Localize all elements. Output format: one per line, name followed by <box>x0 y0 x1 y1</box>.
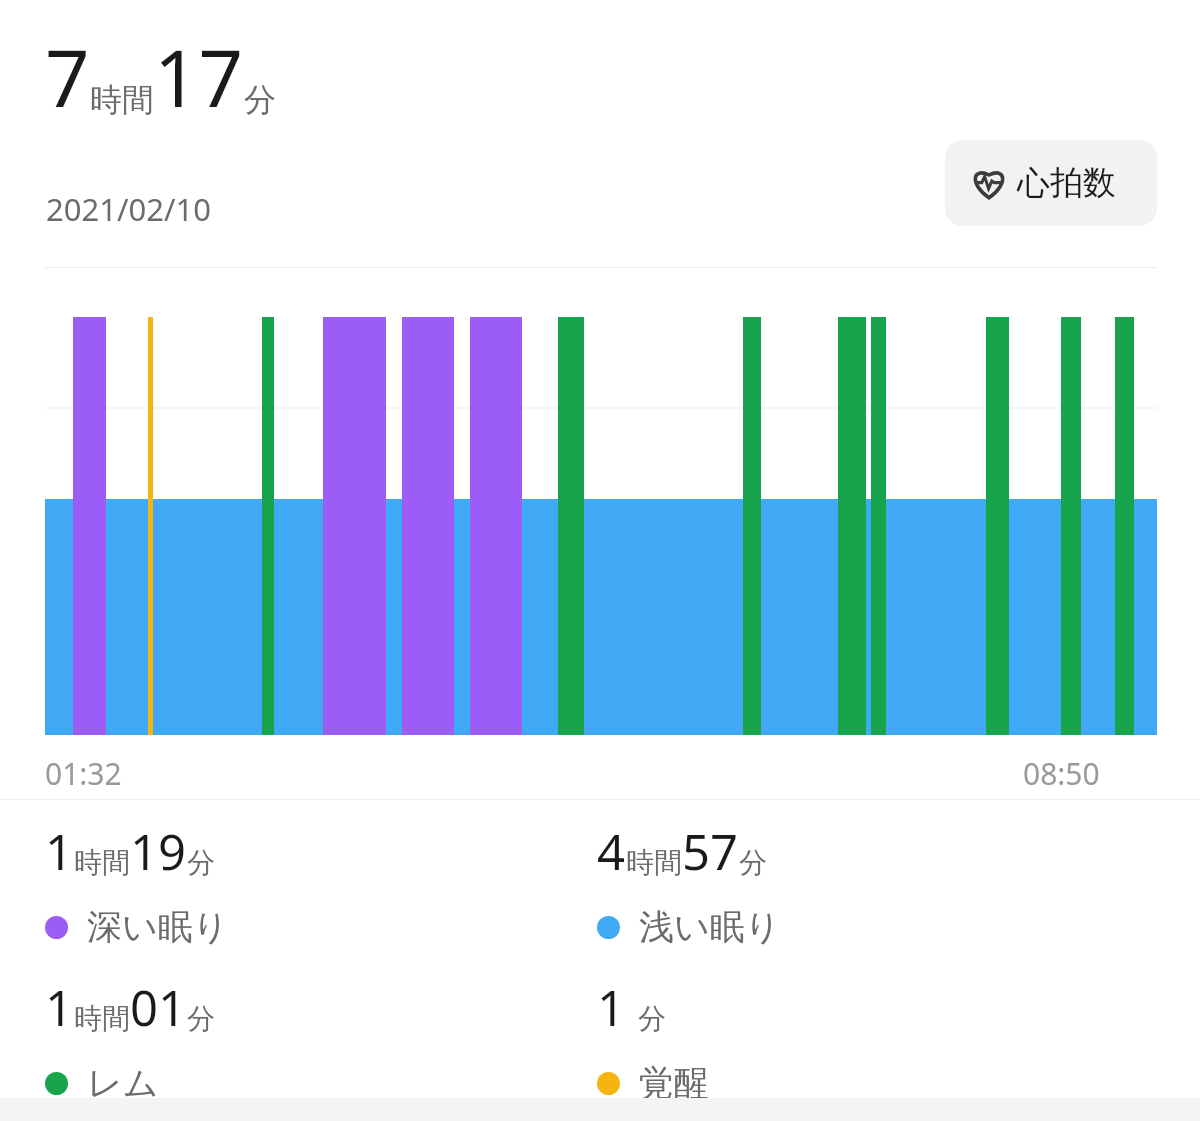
staticText: 19 <box>130 818 187 885</box>
staticText: 1 <box>597 974 626 1041</box>
staticText: 17 <box>154 24 244 130</box>
staticText: 7 <box>45 24 90 130</box>
button[interactable]: 4 <box>597 818 1137 968</box>
staticText: 01 <box>130 974 187 1041</box>
staticText: 分 <box>638 1001 666 1036</box>
button[interactable]: 心拍数 <box>945 140 1157 226</box>
staticText: 時間 <box>626 845 682 880</box>
staticText: 01:32 <box>45 753 122 794</box>
button[interactable]: 1 <box>45 818 585 968</box>
staticText: 1 <box>45 818 74 885</box>
staticText: 1 <box>45 974 74 1041</box>
staticText: レム <box>87 1061 159 1105</box>
button[interactable]: 1 <box>45 974 585 1121</box>
staticText: 時間 <box>74 845 130 880</box>
staticText: 分 <box>187 1001 215 1036</box>
staticText: 57 <box>682 818 739 885</box>
staticText: 覚醒 <box>639 1061 709 1105</box>
staticText: 浅い眠り <box>639 905 781 949</box>
staticText: 分 <box>739 845 767 880</box>
staticText: 2021/02/10 <box>46 188 211 230</box>
staticText: 心拍数 <box>1017 162 1116 204</box>
staticText: 分 <box>244 80 276 120</box>
staticText: 時間 <box>90 80 154 120</box>
staticText: 4 <box>597 818 626 885</box>
button[interactable]: 1 <box>597 974 1137 1121</box>
staticText: 深い眠り <box>87 905 229 949</box>
staticText: 分 <box>187 845 215 880</box>
staticText: 08:50 <box>1023 753 1100 794</box>
staticText: 時間 <box>74 1001 130 1036</box>
